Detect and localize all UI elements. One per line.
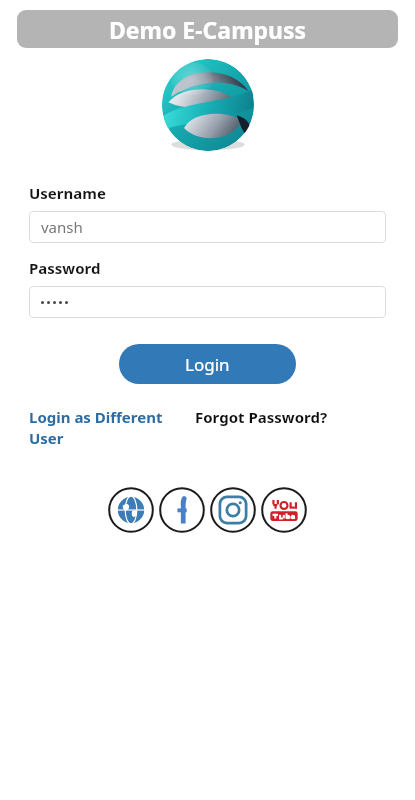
staticText: Forgot Password? [195,407,328,427]
button[interactable]: Login as Different User [29,407,181,449]
button[interactable]: Forgot Password? [195,407,328,427]
button[interactable]: Login [119,344,296,384]
staticText: Username [29,183,106,203]
button[interactable]: YouTube [261,487,307,533]
button[interactable] [29,286,386,318]
staticText: Login as Different User [29,407,181,449]
staticText: Password [29,258,101,278]
button[interactable]: vansh [29,211,386,243]
staticText: Login [185,353,230,376]
button[interactable]: Instagram [210,487,256,533]
button[interactable]: Demo E-Campuss [17,10,398,48]
button[interactable]: Website [108,487,154,533]
staticText: Demo E-Campuss [109,14,307,45]
button[interactable]: Facebook [159,487,205,533]
staticText: vansh [41,217,83,237]
